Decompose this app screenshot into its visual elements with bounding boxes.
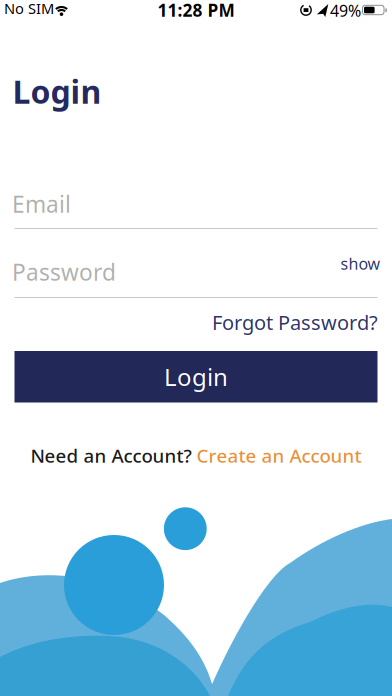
staticText: show bbox=[340, 253, 380, 274]
button[interactable]: Create an Account bbox=[196, 443, 361, 468]
button[interactable]: show bbox=[0, 253, 392, 274]
button[interactable]: Forgot Password? bbox=[0, 309, 392, 336]
button[interactable]: Password bbox=[0, 0, 363, 30]
staticText: Login bbox=[164, 361, 228, 393]
staticText: 11:28 PM bbox=[157, 0, 234, 21]
staticText: Need an Account? bbox=[30, 443, 191, 468]
button[interactable]: Login bbox=[14, 351, 377, 402]
staticText: No SIM bbox=[4, 0, 54, 18]
staticText: Create an Account bbox=[196, 443, 361, 468]
button[interactable]: Email bbox=[0, 0, 363, 30]
staticText: Password bbox=[12, 257, 116, 287]
staticText: Email bbox=[12, 189, 71, 219]
staticText: Login bbox=[12, 70, 101, 112]
staticText: 49% bbox=[330, 0, 361, 21]
staticText: Forgot Password? bbox=[212, 309, 378, 336]
